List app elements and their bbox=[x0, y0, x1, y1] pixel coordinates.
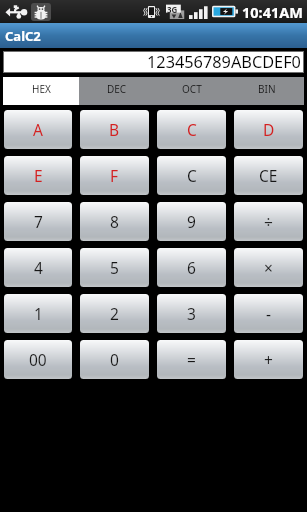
staticText: 10:41AM bbox=[242, 2, 303, 22]
staticText: OCT bbox=[182, 82, 202, 96]
staticText: 00 bbox=[29, 349, 47, 370]
staticText: 1 bbox=[34, 303, 43, 324]
button[interactable]: 0 bbox=[80, 340, 149, 379]
button[interactable]: 4 bbox=[4, 248, 72, 287]
staticText: 6 bbox=[187, 257, 196, 278]
button[interactable]: = bbox=[157, 340, 226, 379]
button[interactable]: 1 bbox=[4, 294, 72, 333]
staticText: × bbox=[264, 257, 273, 278]
button[interactable]: ÷ bbox=[234, 202, 303, 241]
button[interactable]: E bbox=[4, 156, 72, 195]
button[interactable]: BIN bbox=[229, 77, 304, 105]
staticText: CalC2 bbox=[5, 27, 41, 45]
staticText: - bbox=[266, 303, 271, 324]
button[interactable]: D bbox=[234, 110, 303, 149]
staticText: 4 bbox=[34, 257, 43, 278]
other: 3G data bbox=[166, 4, 185, 20]
other: Signal strength bbox=[189, 5, 209, 19]
staticText: 5 bbox=[110, 257, 119, 278]
button[interactable]: 00 bbox=[4, 340, 72, 379]
button[interactable]: 9 bbox=[157, 202, 226, 241]
button[interactable]: B bbox=[80, 110, 149, 149]
staticText: F bbox=[110, 165, 119, 186]
button[interactable]: 6 bbox=[157, 248, 226, 287]
other: Battery charging bbox=[212, 4, 238, 19]
button[interactable]: 7 bbox=[4, 202, 72, 241]
button[interactable]: C bbox=[157, 156, 226, 195]
other: Vibrate mode bbox=[141, 5, 162, 19]
button[interactable]: DEC bbox=[79, 77, 154, 105]
other: USB connected bbox=[5, 5, 28, 19]
staticText: 3 bbox=[187, 303, 196, 324]
staticText: 0 bbox=[110, 349, 119, 370]
button[interactable]: + bbox=[234, 340, 303, 379]
button[interactable]: C bbox=[157, 110, 226, 149]
staticText: B bbox=[109, 119, 120, 140]
staticText: E bbox=[34, 165, 43, 186]
staticText: 9 bbox=[187, 211, 196, 232]
button[interactable]: 2 bbox=[80, 294, 149, 333]
staticText: C bbox=[187, 119, 197, 140]
staticText: 2 bbox=[110, 303, 119, 324]
staticText: + bbox=[264, 349, 273, 370]
staticText: BIN bbox=[258, 82, 276, 96]
button[interactable]: 8 bbox=[80, 202, 149, 241]
staticText: 123456789ABCDEF0 bbox=[147, 51, 301, 73]
other: USB debugging enabled bbox=[31, 3, 51, 21]
staticText: HEX bbox=[32, 82, 51, 96]
button[interactable]: × bbox=[234, 248, 303, 287]
staticText: A bbox=[33, 119, 43, 140]
staticText: = bbox=[187, 349, 196, 370]
button[interactable]: CE bbox=[234, 156, 303, 195]
staticText: DEC bbox=[107, 82, 127, 96]
button[interactable]: 5 bbox=[80, 248, 149, 287]
staticText: 8 bbox=[110, 211, 119, 232]
staticText: C bbox=[187, 165, 197, 186]
staticText: 7 bbox=[34, 211, 43, 232]
staticText: ÷ bbox=[264, 211, 273, 232]
button[interactable]: 3 bbox=[157, 294, 226, 333]
staticText: D bbox=[263, 119, 275, 140]
button[interactable]: F bbox=[80, 156, 149, 195]
staticText: 3G bbox=[167, 4, 178, 15]
button[interactable]: HEX bbox=[3, 77, 79, 105]
staticText: CE bbox=[259, 165, 278, 186]
button[interactable]: - bbox=[234, 294, 303, 333]
button[interactable]: A bbox=[4, 110, 72, 149]
button[interactable]: OCT bbox=[154, 77, 229, 105]
